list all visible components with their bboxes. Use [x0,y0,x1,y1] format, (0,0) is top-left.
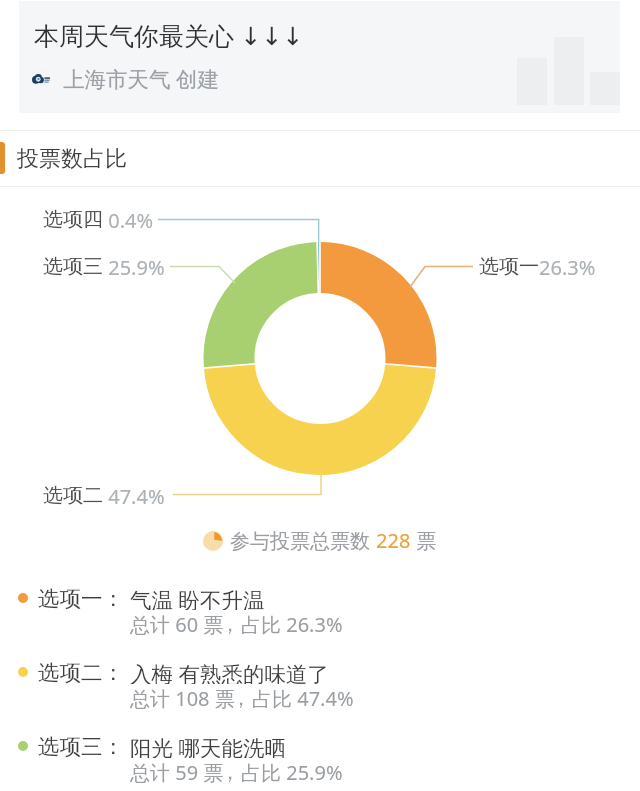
button[interactable]: 选项二： [0,659,640,713]
staticText: 25.9% [103,254,165,281]
staticText: 选项二 [43,483,103,508]
staticText: 占比 47.4% [252,685,354,712]
staticText: 总计 108 票 [130,685,235,712]
staticText: 26.3% [539,254,596,281]
staticText: 228 [376,527,411,554]
staticText: 气温 盼不升温 [130,585,265,610]
staticText: 投票数占比 [17,145,127,173]
button[interactable]: 上海市天气 头像 [32,64,220,93]
button[interactable]: 选项四 [43,207,154,234]
button[interactable]: 投票数占比 [0,131,640,186]
staticText: ， [220,612,240,637]
staticText: ， [231,686,251,711]
staticText: 47.4% [103,483,165,510]
staticText: ， [220,760,240,785]
other: 上海市天气 头像 [32,69,52,89]
staticText: 选项三： [38,733,124,758]
staticText: 总计 59 票 [130,759,224,786]
staticText: 占比 26.3% [241,611,343,638]
button[interactable]: 选项二 [43,483,165,510]
staticText: 0.4% [103,207,154,234]
staticText: 选项二： [38,659,124,684]
staticText: 选项三 [43,254,103,279]
staticText: 占比 25.9% [241,759,343,786]
button[interactable]: 选项三： [0,733,640,787]
staticText: 参与投票总票数 [230,527,376,554]
button[interactable]: 选项三 [43,254,165,281]
button[interactable]: 选项一： [0,585,640,639]
staticText: 总计 60 票 [130,611,224,638]
button[interactable]: 本周天气你最关心 ↓↓↓ [19,1,620,113]
staticText: 选项四 [43,207,103,232]
staticText: 本周天气你最关心 ↓↓↓ [34,18,304,52]
staticText: 选项一 [479,254,539,279]
staticText: 阳光 哪天能洗晒 [130,733,287,758]
button[interactable]: 选项一 [479,254,596,281]
other: 票数统计 [203,531,223,551]
staticText: 入梅 有熟悉的味道了 [130,659,330,684]
staticText: 票 [411,527,437,554]
other: 投票数占比饼图 [0,0,640,791]
staticText: 选项一： [38,585,124,610]
staticText: 上海市天气 创建 [63,64,220,93]
